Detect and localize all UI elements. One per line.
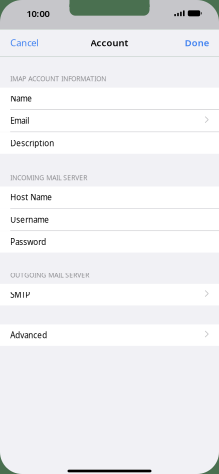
staticText: Description — [10, 138, 54, 148]
staticText: 10:00 — [26, 7, 49, 19]
staticText: Account — [90, 36, 128, 49]
button[interactable]: Cancel — [0, 32, 38, 53]
staticText: Host Name — [10, 192, 52, 202]
button[interactable]: Done — [185, 32, 219, 53]
button[interactable]: Host Name — [0, 186, 219, 208]
button[interactable]: Advanced — [0, 324, 219, 346]
button[interactable]: Password — [0, 231, 219, 253]
button[interactable]: SMTP — [0, 284, 219, 305]
staticText: INCOMING MAIL SERVER — [10, 173, 87, 182]
staticText: Email — [10, 115, 29, 126]
staticText: OUTGOING MAIL SERVER — [10, 270, 89, 279]
button[interactable]: Username — [0, 209, 219, 230]
staticText: Done — [185, 36, 209, 49]
staticText: SMTP — [10, 289, 30, 300]
staticText: Password — [10, 236, 46, 247]
staticText: Username — [10, 214, 49, 225]
staticText: IMAP ACCOUNT INFORMATION — [10, 74, 106, 83]
button[interactable]: Description — [0, 132, 219, 154]
button[interactable]: Name — [0, 88, 219, 109]
staticText: Name — [10, 93, 32, 104]
staticText: Advanced — [10, 330, 47, 340]
button[interactable]: Email — [0, 110, 219, 131]
staticText: Cancel — [10, 36, 38, 49]
